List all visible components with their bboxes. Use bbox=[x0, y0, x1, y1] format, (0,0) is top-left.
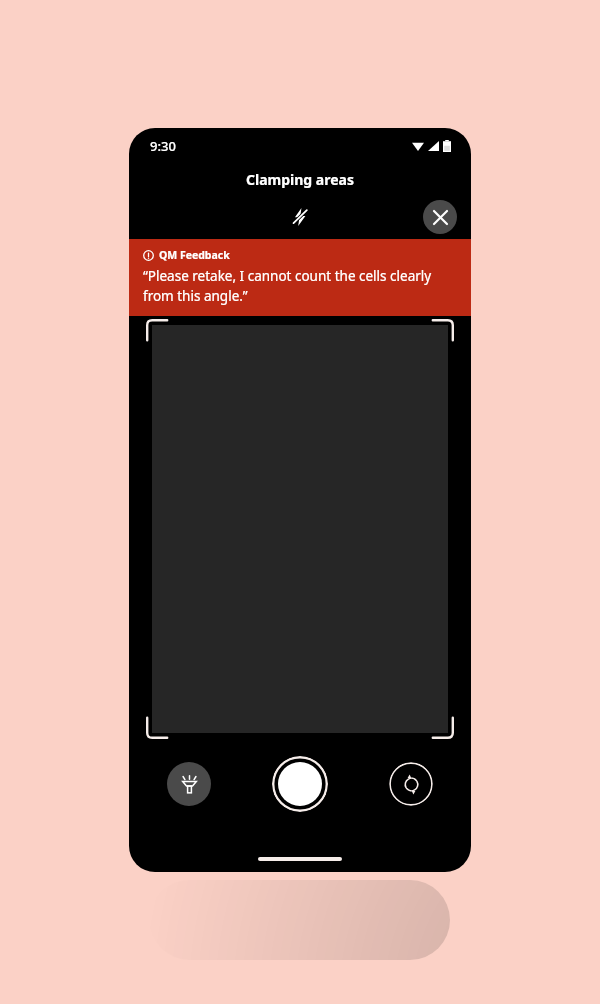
staticText: “Please retake, I cannot count the cells… bbox=[143, 267, 457, 305]
button[interactable]: Switch camera bbox=[389, 762, 433, 806]
button[interactable]: Toggle torch bbox=[167, 762, 211, 806]
staticText: 9:30 bbox=[150, 137, 176, 155]
button[interactable]: Toggle flash bbox=[282, 199, 318, 235]
button[interactable]: Close bbox=[423, 200, 457, 234]
staticText: QM Feedback bbox=[159, 248, 230, 262]
button[interactable]: Take photo bbox=[272, 756, 328, 812]
staticText: Clamping areas bbox=[246, 170, 354, 189]
